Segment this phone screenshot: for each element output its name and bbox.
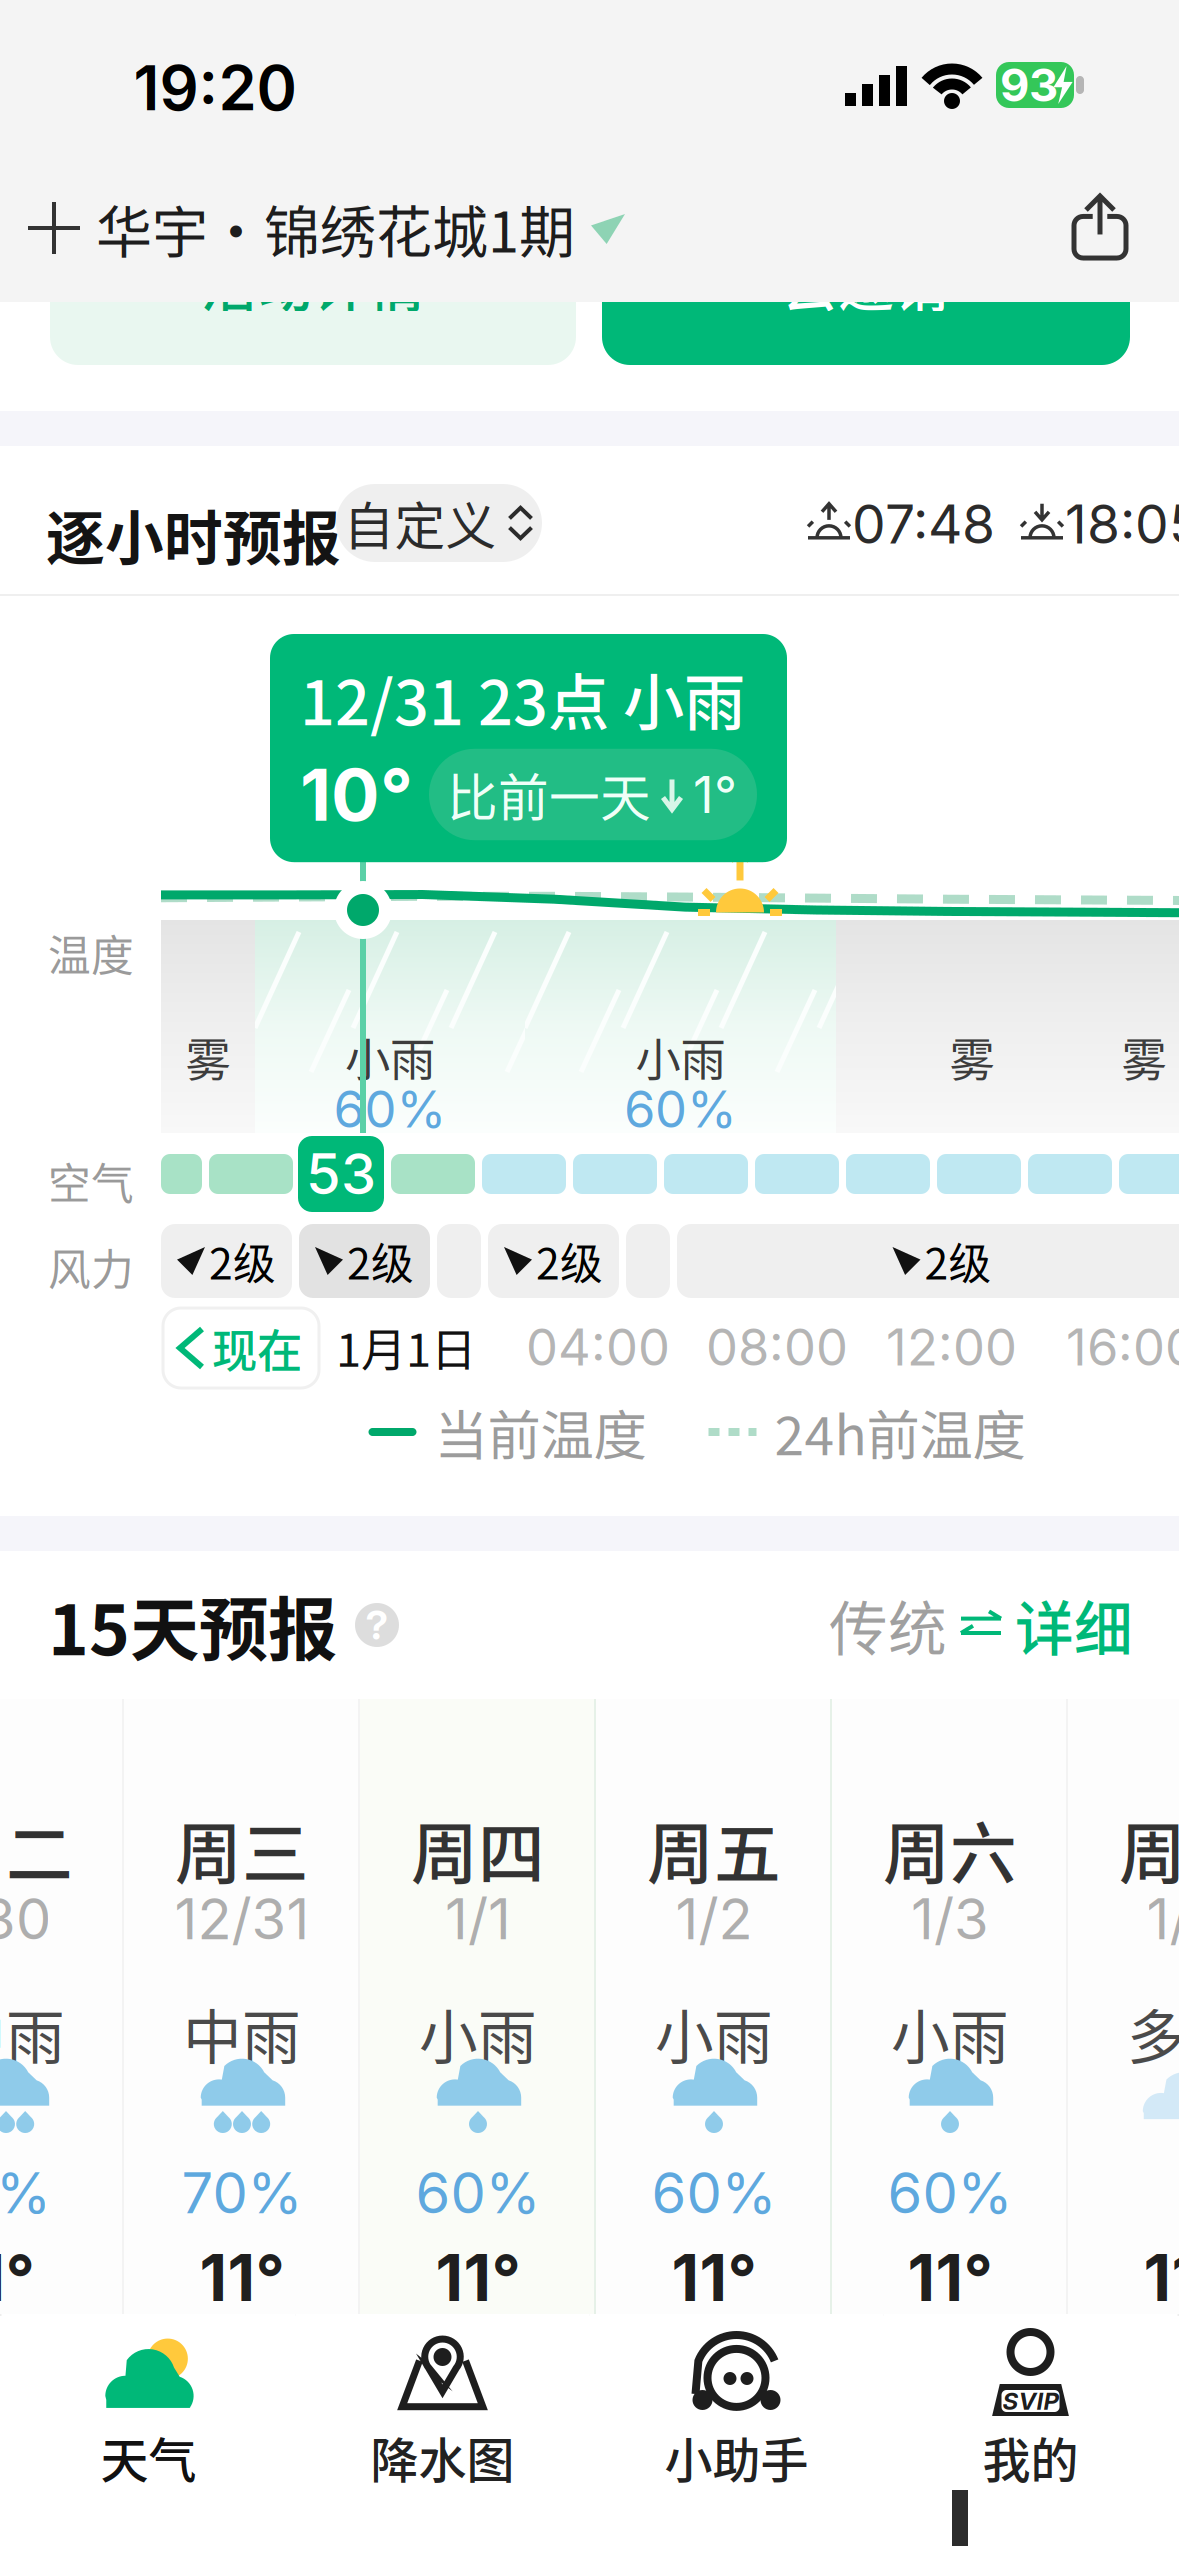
staticText: 04:00	[526, 1316, 670, 1378]
staticText: 小雨	[345, 1024, 435, 1090]
staticText: SVIP	[1002, 2386, 1058, 2415]
staticText: 19:20	[133, 51, 296, 125]
staticText: 1/2	[675, 1885, 752, 1953]
staticText: 天气	[100, 2422, 196, 2492]
staticText: 1/4	[1146, 1885, 1179, 1953]
button[interactable]: 传统	[829, 1582, 1179, 1667]
staticText: 11°	[1143, 2239, 1179, 2316]
staticText: 2级	[209, 1230, 276, 1292]
staticText: 12/31	[174, 1885, 309, 1953]
staticText: 空气	[48, 1150, 134, 1212]
staticText: 风力	[48, 1236, 134, 1298]
staticText: 53	[306, 1140, 376, 1208]
staticText: 16:00	[1066, 1316, 1179, 1378]
staticText: 当前温度	[434, 1393, 646, 1471]
staticText: 2级	[924, 1230, 991, 1292]
staticText: 60%	[651, 2159, 776, 2227]
button[interactable]: 降水图	[295, 2314, 589, 2556]
staticText: 中雨	[183, 1991, 301, 2076]
staticText: 多云	[1127, 1991, 1179, 2076]
staticText: 我的	[982, 2422, 1078, 2492]
button[interactable]: 周五	[596, 1699, 832, 2314]
staticText: 周六	[883, 1801, 1017, 1897]
staticText: 逐小时预报	[46, 492, 341, 577]
staticText: 去邀请	[782, 241, 950, 323]
staticText: 24h前温度	[774, 1393, 1025, 1471]
staticText: 小雨	[891, 1991, 1009, 2076]
staticText: 60%	[333, 1078, 446, 1140]
staticText: 93	[1000, 58, 1058, 112]
staticText: 12:00	[886, 1316, 1017, 1378]
staticText: 现在	[212, 1315, 302, 1381]
staticText: 1°	[0, 2239, 34, 2316]
staticText: 2级	[536, 1230, 603, 1292]
staticText: 1月1日	[336, 1314, 476, 1380]
staticText: 降水图	[370, 2422, 514, 2492]
button[interactable]: 华宇·锦绣花城1期	[0, 150, 529, 230]
staticText: 小雨	[635, 1024, 725, 1090]
staticText: ?	[365, 1601, 388, 1649]
button[interactable]: 去邀请	[0, 302, 528, 420]
button[interactable]: 天气	[1, 2314, 295, 2556]
staticText: 周二	[0, 1801, 73, 1897]
staticText: 1/3	[911, 1885, 989, 1953]
staticText: 雾	[949, 1024, 994, 1090]
staticText: 周三	[175, 1801, 309, 1897]
staticText: 10°	[300, 751, 413, 838]
button[interactable]: 自定义	[0, 446, 206, 524]
staticText: 周五	[647, 1801, 781, 1897]
staticText: 传统	[829, 1582, 947, 1667]
button[interactable]: SVIP	[883, 2314, 1177, 2556]
button[interactable]: 周三	[124, 1699, 360, 2314]
staticText: 1/1	[445, 1885, 511, 1953]
staticText: 11°	[907, 2239, 992, 2316]
staticText: 小助手	[664, 2422, 808, 2492]
staticText: 周日	[1119, 1801, 1179, 1897]
staticText: 15天预报	[48, 1575, 337, 1675]
staticText: 12/31 23点 小雨	[300, 654, 745, 743]
staticText: 活动详情	[201, 241, 425, 323]
staticText: 08:00	[706, 1316, 848, 1378]
staticText: 小雨	[419, 1991, 537, 2076]
staticText: 中雨	[0, 1991, 65, 2076]
staticText: 18:05	[1065, 492, 1179, 556]
staticText: 雾	[1121, 1024, 1166, 1090]
staticText: 小雨	[655, 1991, 773, 2076]
staticText: 60%	[887, 2159, 1012, 2227]
staticText: 2级	[347, 1230, 414, 1292]
staticText: 详细	[1015, 1582, 1133, 1667]
button[interactable]: 小助手	[589, 2314, 883, 2556]
staticText: 70%	[181, 2159, 302, 2227]
staticText: 60%	[624, 1078, 737, 1140]
staticText: 11°	[435, 2239, 520, 2316]
button[interactable]: 周日	[1068, 1699, 1179, 2314]
button[interactable]: 周四	[360, 1699, 596, 2314]
staticText: 比前一天	[447, 758, 651, 831]
button[interactable]: 周二	[0, 1699, 124, 2314]
staticText: 自定义	[343, 486, 496, 560]
staticText: 雾	[185, 1024, 230, 1090]
staticText: 11°	[199, 2239, 284, 2316]
staticText: /30	[0, 1885, 51, 1953]
staticText: 温度	[48, 922, 134, 984]
staticText: 周四	[411, 1801, 545, 1897]
staticText: 1°	[693, 764, 737, 825]
button[interactable]: 周六	[832, 1699, 1068, 2314]
staticText: 华宇·锦绣花城1期	[96, 187, 575, 269]
staticText: 60%	[415, 2159, 540, 2227]
staticText: 0%	[0, 2159, 51, 2227]
button[interactable]: 活动详情	[0, 302, 526, 420]
staticText: 11°	[671, 2239, 756, 2316]
staticText: 07:48	[852, 492, 995, 556]
